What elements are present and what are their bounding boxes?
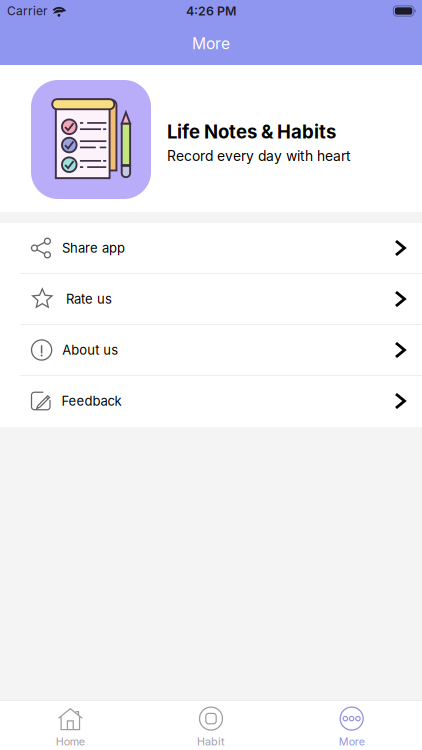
staticText: 4:26 PM — [186, 3, 236, 18]
button[interactable]: Habit — [141, 701, 281, 748]
button[interactable]: Share app — [0, 223, 422, 274]
staticText: Feedback — [61, 393, 121, 409]
button[interactable]: More — [281, 701, 422, 748]
button[interactable]: Home — [0, 701, 141, 748]
button[interactable]: Feedback — [0, 376, 422, 427]
staticText: Life Notes & Habits — [167, 121, 336, 143]
staticText: Record every day with heart — [167, 148, 351, 164]
staticText: Home — [56, 735, 85, 748]
staticText: About us — [62, 342, 118, 358]
button[interactable]: About us — [0, 325, 422, 376]
staticText: Habit — [197, 735, 225, 748]
staticText: More — [339, 735, 365, 748]
staticText: Rate us — [66, 291, 112, 307]
button[interactable]: Rate us — [0, 274, 422, 325]
staticText: Carrier — [7, 4, 48, 18]
staticText: More — [192, 34, 230, 53]
staticText: Share app — [62, 240, 125, 256]
